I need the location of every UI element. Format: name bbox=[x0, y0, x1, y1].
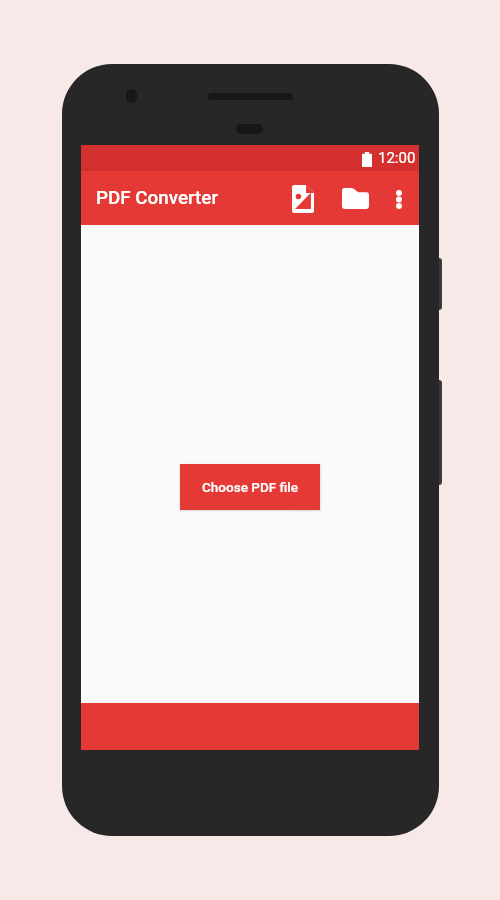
button[interactable]: Open folder bbox=[331, 171, 380, 225]
button[interactable]: More options bbox=[380, 171, 418, 225]
button[interactable]: Choose PDF file bbox=[180, 464, 320, 510]
staticText: 12:00 bbox=[378, 149, 416, 167]
staticText: Choose PDF file bbox=[202, 479, 299, 495]
button[interactable]: Convert image to PDF bbox=[275, 171, 331, 225]
staticText: PDF Converter bbox=[96, 187, 219, 209]
